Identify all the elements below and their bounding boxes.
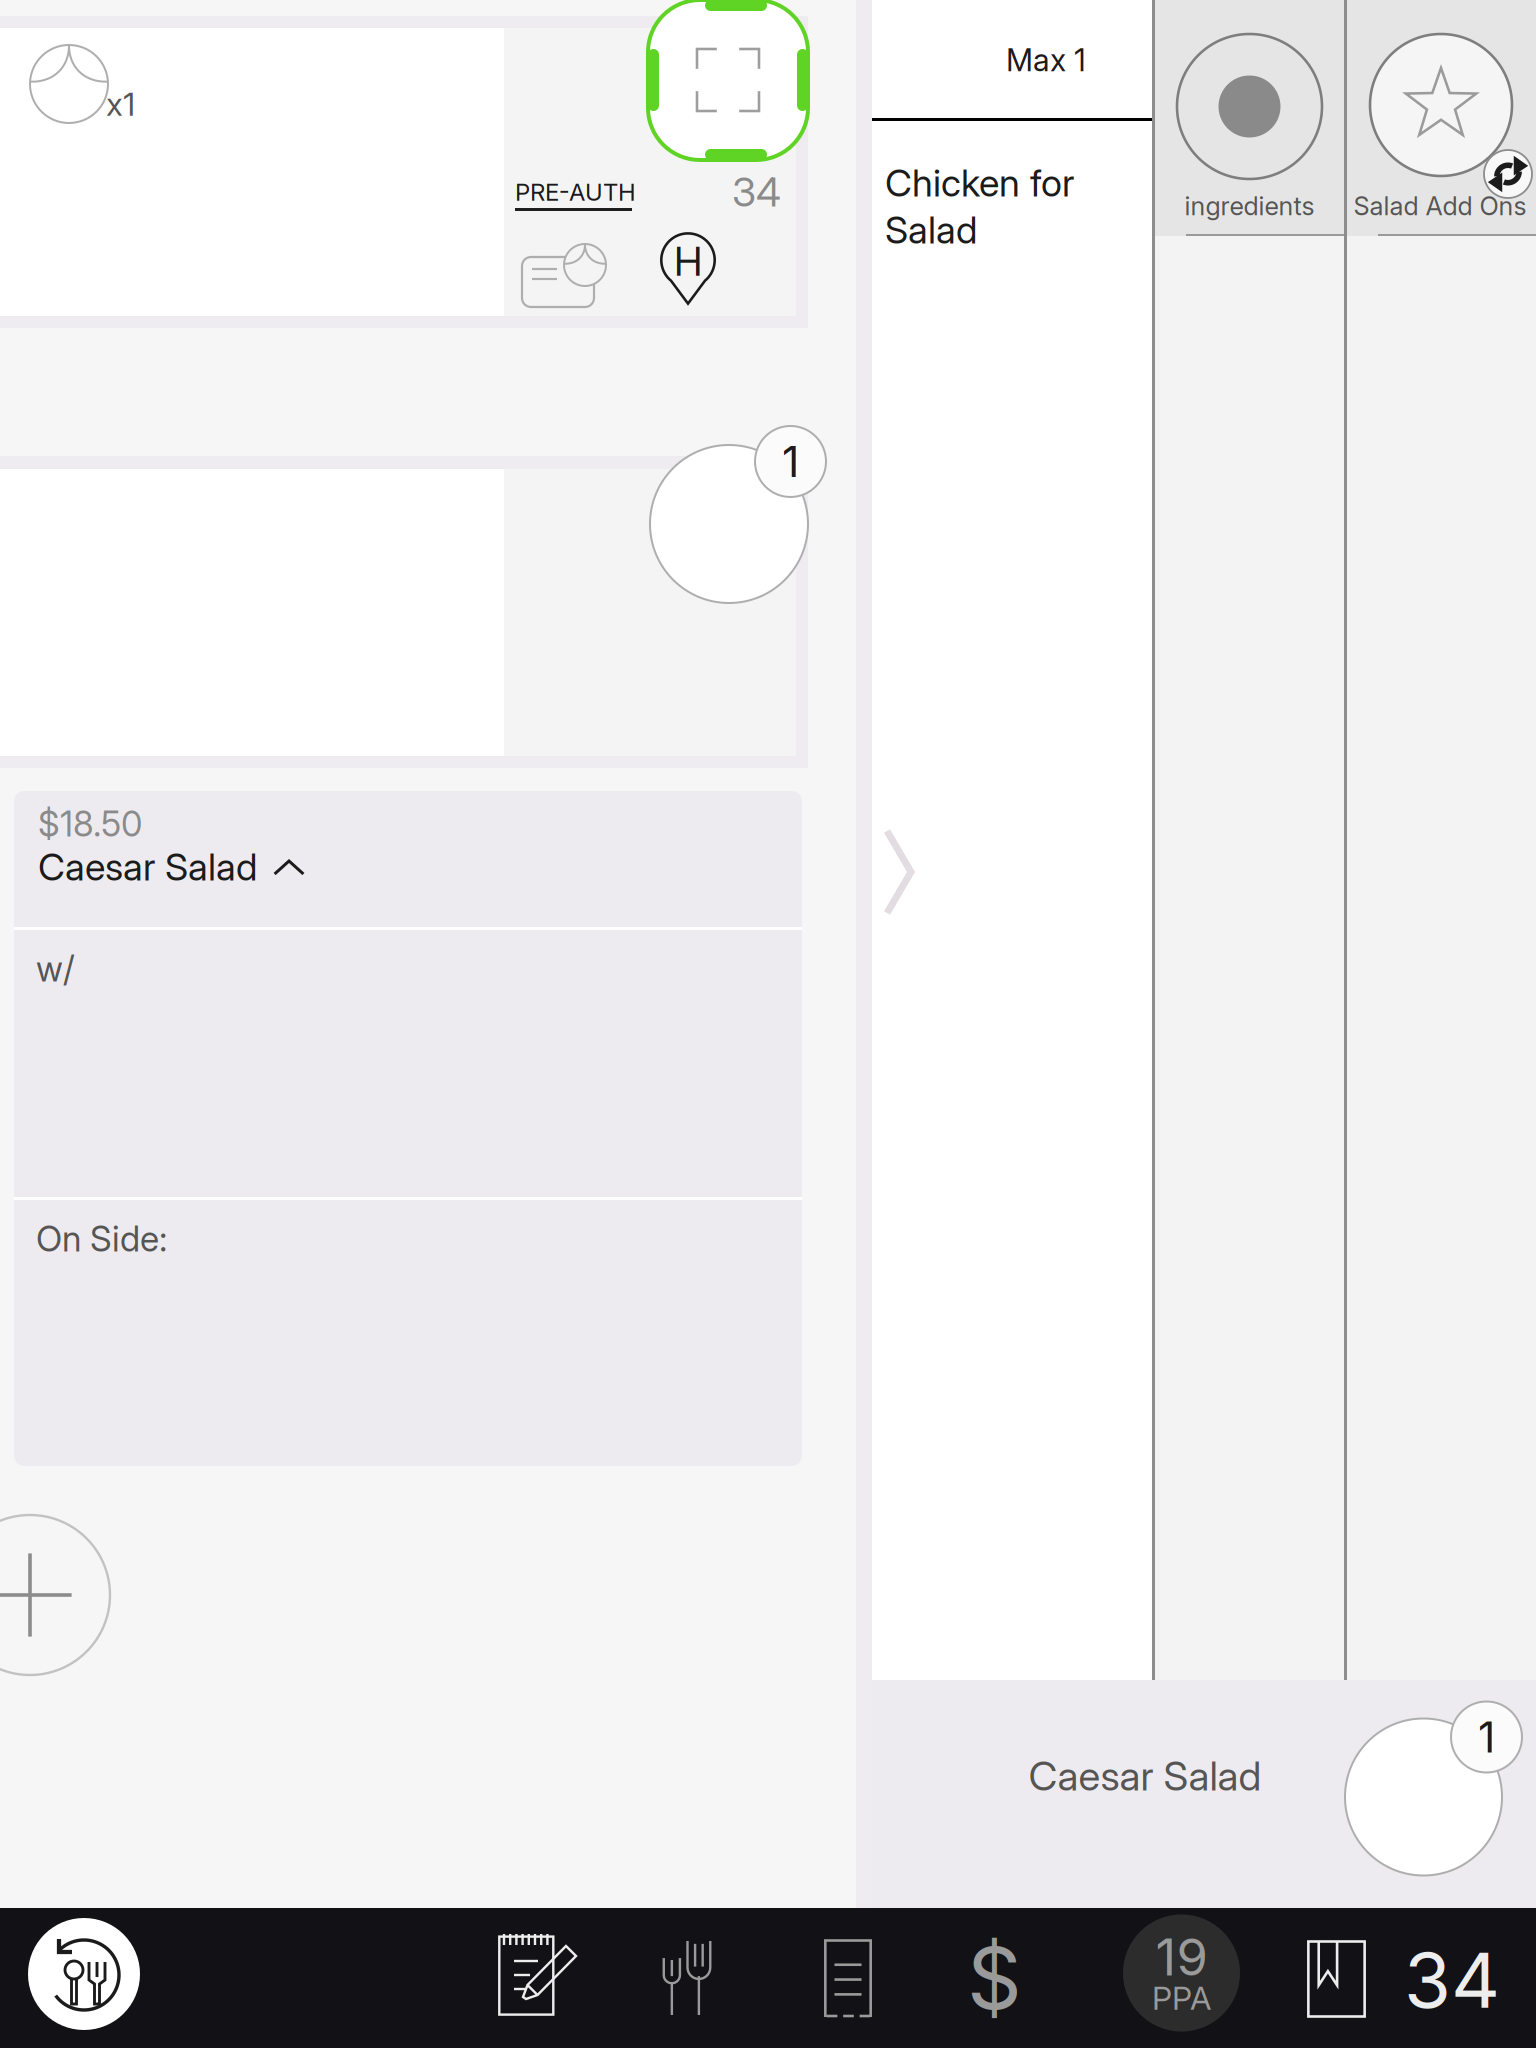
button[interactable]: Scan	[648, 0, 808, 160]
button[interactable]: Per-person average 19	[0, 1908, 1536, 2048]
staticText: x1	[106, 85, 135, 123]
staticText: Chicken for	[885, 160, 1074, 206]
button[interactable]: Courses	[0, 1908, 1536, 2048]
staticText: Caesar Salad	[1028, 1752, 1261, 1800]
staticText: On Side:	[36, 1218, 167, 1260]
staticText: Caesar Salad	[38, 844, 257, 890]
button[interactable]: PRE-AUTH	[0, 0, 1536, 2048]
button[interactable]: Add item	[0, 0, 1536, 2048]
staticText: Salad Add Ons	[1353, 191, 1526, 221]
staticText: Salad	[885, 207, 977, 253]
button[interactable]: Order notes	[0, 1908, 1536, 2048]
button[interactable]: Salad Add Ons	[0, 0, 1536, 2048]
staticText: $	[967, 1926, 1041, 2030]
staticText: w/	[36, 948, 75, 990]
staticText: PPA	[1152, 1979, 1211, 2017]
button[interactable]: Tabs	[0, 1908, 1536, 2048]
staticText: 34	[1404, 1934, 1500, 2026]
staticText: 19	[1155, 1926, 1207, 1988]
button[interactable]: ingredients	[0, 0, 1536, 2048]
staticText: 34	[732, 168, 781, 216]
button[interactable]: Receipt	[0, 1908, 1536, 2048]
button[interactable]: Table 34	[0, 1908, 1536, 2048]
staticText: PRE-AUTH	[515, 177, 636, 206]
button[interactable]: Payment	[0, 1908, 1536, 2048]
staticText: H	[674, 237, 702, 285]
staticText: ingredients	[1184, 191, 1314, 221]
staticText: $18.50	[38, 803, 142, 845]
staticText: Max 1	[1006, 41, 1086, 78]
staticText: 1	[1478, 1711, 1495, 1763]
staticText: 1	[782, 436, 799, 487]
button[interactable]: Re-fire order	[0, 1908, 1536, 2048]
